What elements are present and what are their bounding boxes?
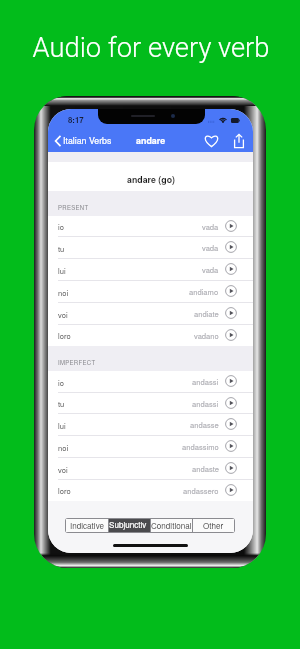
button[interactable]: Subjunctive bbox=[109, 519, 150, 532]
staticText: andassimo bbox=[182, 441, 219, 452]
staticText: IMPERFECT bbox=[58, 358, 96, 367]
staticText: Other bbox=[203, 520, 224, 532]
button[interactable]: Indicative bbox=[66, 519, 108, 532]
staticText: 8:17 bbox=[68, 114, 84, 125]
button[interactable]: tu bbox=[48, 393, 253, 414]
staticText: loro bbox=[58, 330, 71, 341]
button[interactable]: Conditional bbox=[151, 519, 192, 532]
button[interactable]: loro bbox=[48, 325, 253, 346]
staticText: andassero bbox=[183, 485, 219, 496]
staticText: voi bbox=[58, 464, 68, 475]
staticText: andiamo bbox=[189, 286, 219, 297]
staticText: andare bbox=[136, 134, 166, 147]
staticText: noi bbox=[58, 442, 69, 453]
staticText: lui bbox=[58, 265, 66, 276]
button[interactable]: lui bbox=[48, 414, 253, 436]
button[interactable]: Favourite bbox=[202, 132, 220, 150]
button[interactable]: lui bbox=[48, 259, 253, 281]
staticText: vadano bbox=[194, 330, 219, 341]
staticText: tu bbox=[58, 243, 65, 254]
staticText: Indicative bbox=[70, 520, 105, 532]
staticText: andassi bbox=[192, 398, 219, 409]
staticText: vada bbox=[202, 264, 219, 275]
staticText: Audio for every verb bbox=[1, 32, 300, 64]
staticText: andiate bbox=[194, 308, 219, 319]
button[interactable]: io bbox=[48, 371, 253, 393]
staticText: io bbox=[58, 377, 64, 388]
button[interactable]: Italian Verbs bbox=[48, 129, 116, 152]
button[interactable]: Share bbox=[230, 132, 248, 150]
staticText: andare (go) bbox=[127, 173, 175, 186]
button[interactable]: voi bbox=[48, 303, 253, 325]
staticText: Conditional bbox=[151, 520, 192, 532]
button[interactable]: noi bbox=[48, 281, 253, 303]
button[interactable]: tu bbox=[48, 237, 253, 259]
staticText: lui bbox=[58, 420, 66, 431]
button[interactable]: io bbox=[48, 216, 253, 237]
staticText: PRESENT bbox=[58, 203, 89, 212]
staticText: Subjunctive bbox=[109, 519, 150, 532]
staticText: vada bbox=[202, 242, 219, 253]
staticText: andaste bbox=[192, 463, 219, 474]
button[interactable]: noi bbox=[48, 436, 253, 458]
button[interactable]: loro bbox=[48, 480, 253, 501]
staticText: andassi bbox=[192, 376, 219, 387]
button[interactable]: voi bbox=[48, 458, 253, 480]
staticText: andasse bbox=[190, 419, 219, 430]
staticText: vada bbox=[202, 221, 219, 232]
staticText: io bbox=[58, 221, 64, 232]
staticText: voi bbox=[58, 309, 68, 320]
staticText: tu bbox=[58, 398, 65, 409]
button[interactable]: Other bbox=[193, 519, 234, 532]
staticText: noi bbox=[58, 287, 69, 298]
staticText: loro bbox=[58, 485, 71, 496]
staticText: Italian Verbs bbox=[63, 134, 112, 147]
